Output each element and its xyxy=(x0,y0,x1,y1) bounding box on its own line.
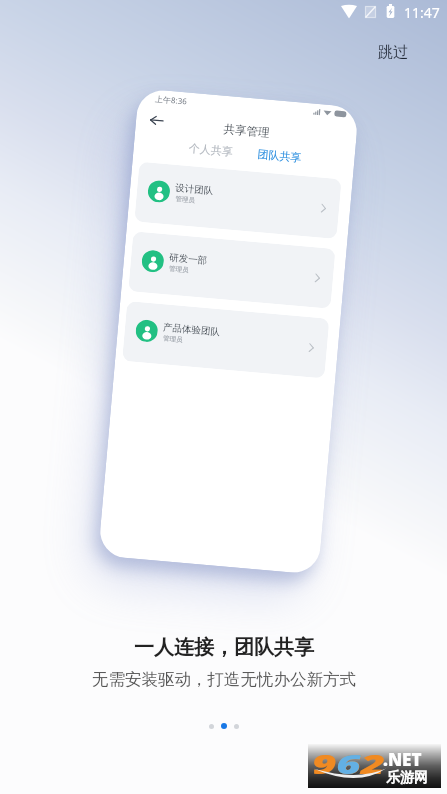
button[interactable]: 团队共享 xyxy=(252,141,307,170)
staticText: 设计团队 xyxy=(175,182,214,197)
staticText: 6 xyxy=(336,746,362,781)
staticText: 产品体验团队 xyxy=(163,321,220,338)
button[interactable]: 个人共享 xyxy=(183,135,239,164)
button[interactable]: 研发一部 xyxy=(128,231,336,309)
staticText: 管理员 xyxy=(163,334,183,344)
staticText: 团队共享 xyxy=(257,147,302,165)
staticText: 共享管理 xyxy=(223,122,270,140)
button[interactable]: 跳过 xyxy=(368,38,418,67)
staticText: 962 xyxy=(312,746,386,781)
staticText: 个人共享 xyxy=(188,141,233,159)
staticText: 无需安装驱动，打造无忧办公新方式 xyxy=(92,669,356,690)
staticText: 11:47 xyxy=(404,3,440,22)
staticText: 研发一部 xyxy=(169,252,208,267)
staticText: 上午8:36 xyxy=(155,93,187,106)
button[interactable]: Back xyxy=(149,113,165,128)
staticText: 乐游网 xyxy=(386,769,428,787)
button[interactable]: 设计团队 xyxy=(134,162,342,239)
staticText: 一人连接，团队共享 xyxy=(134,635,314,660)
staticText: 管理员 xyxy=(169,265,189,274)
staticText: .NET xyxy=(383,748,422,771)
staticText: 跳过 xyxy=(378,43,408,62)
button[interactable]: 产品体验团队 xyxy=(122,301,329,379)
staticText: 管理员 xyxy=(175,195,196,205)
